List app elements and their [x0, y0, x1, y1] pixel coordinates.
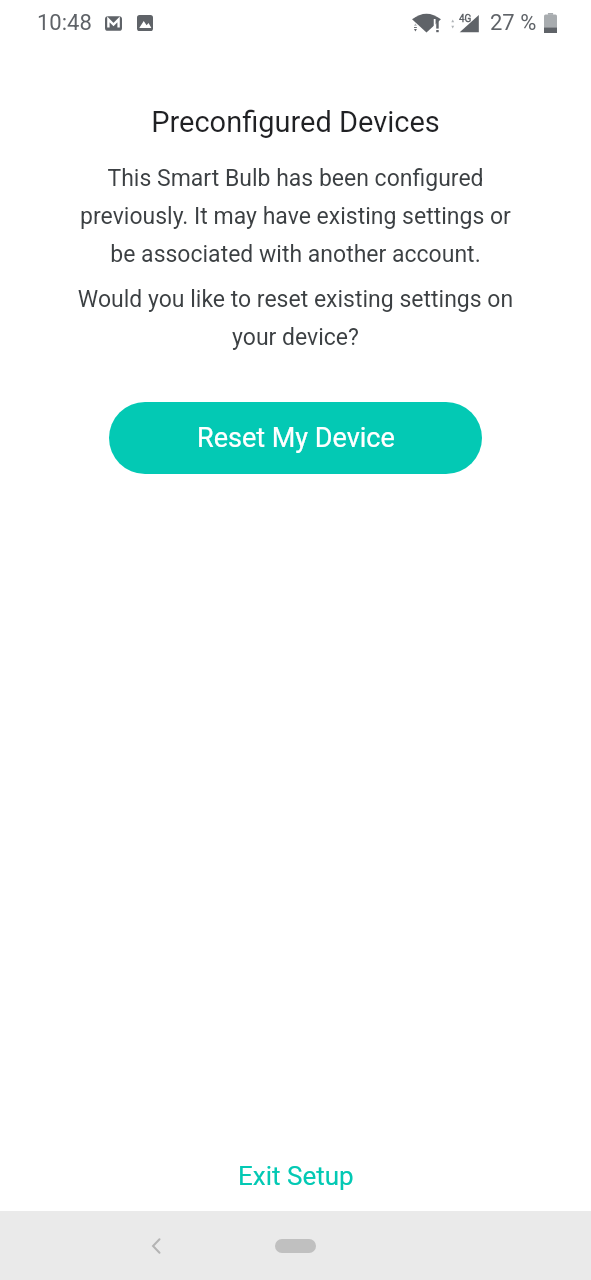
staticText: Would you like to reset existing setting…: [20, 286, 571, 351]
staticText: Exit Setup: [238, 1161, 354, 1191]
staticText: Reset My Device: [197, 422, 395, 454]
button[interactable]: Reset My Device: [109, 402, 482, 474]
button[interactable]: Back: [134, 1224, 178, 1268]
button[interactable]: Home: [275, 1239, 316, 1253]
staticText: 10:48: [37, 10, 92, 36]
staticText: Preconfigured Devices: [0, 105, 591, 139]
button[interactable]: Exit Setup: [218, 1155, 374, 1197]
staticText: This Smart Bulb has been configured prev…: [20, 165, 571, 268]
staticText: 4G: [459, 13, 472, 25]
staticText: 27 %: [490, 10, 537, 36]
